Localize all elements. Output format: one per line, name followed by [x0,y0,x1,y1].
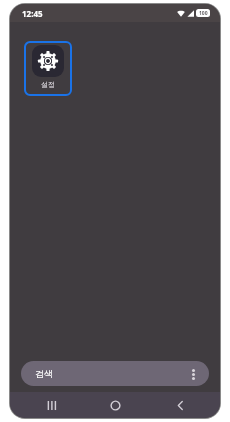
button[interactable]: Back [156,392,204,418]
button[interactable]: 더보기 [186,367,200,381]
button[interactable]: Home [91,392,139,418]
staticText: 12:45 [22,8,43,19]
staticText: 설정 [41,80,55,89]
button[interactable]: Recents [27,392,75,418]
staticText: 100 [199,10,208,17]
button[interactable]: 설정 [24,41,72,96]
staticText: 검색 [35,368,53,379]
button[interactable]: 검색 [21,361,209,386]
